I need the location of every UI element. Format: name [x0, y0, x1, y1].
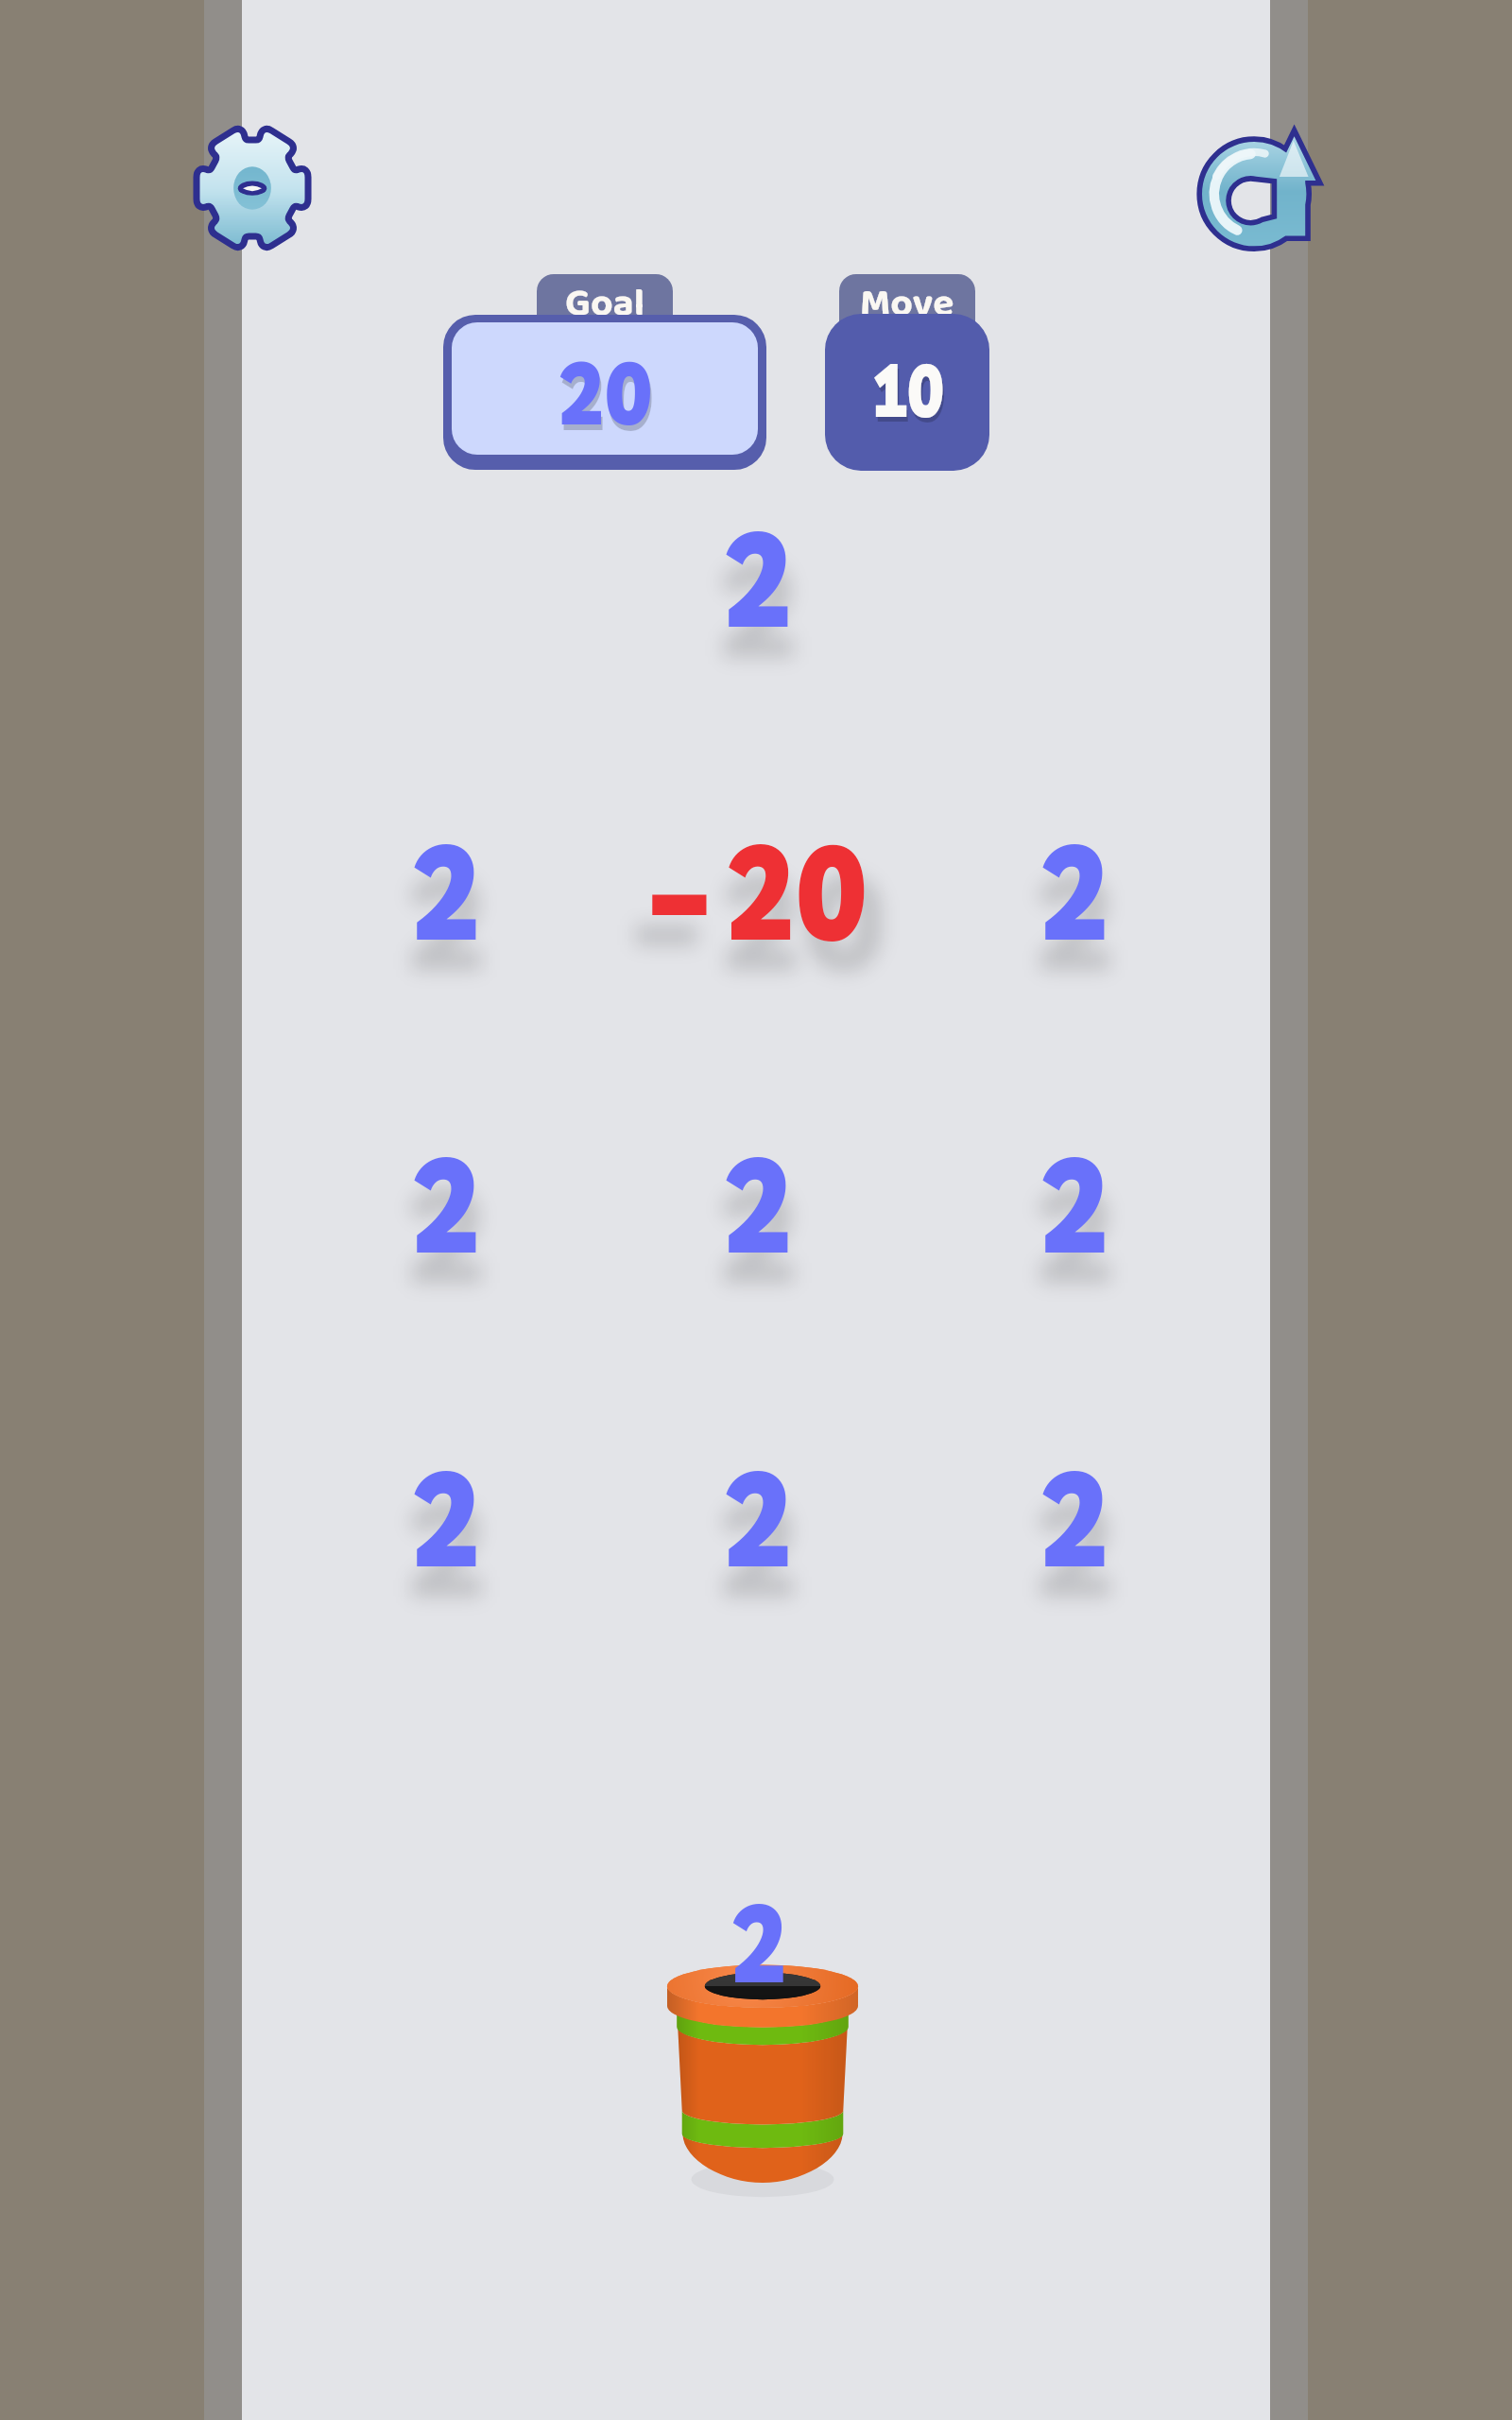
button[interactable]: Tile [626, 1374, 890, 1658]
staticText: 20 [560, 343, 654, 452]
button[interactable]: Tile [942, 1061, 1207, 1344]
staticText: – 20 [630, 837, 887, 1003]
staticText: 2 [404, 837, 489, 1003]
staticText: 2 [723, 1433, 794, 1599]
staticText: 2 [730, 1874, 788, 2009]
button[interactable]: Tile [942, 1374, 1207, 1658]
staticText: 2 [1033, 1463, 1117, 1630]
button[interactable]: Tile [314, 1061, 578, 1344]
staticText: 10 [873, 347, 946, 441]
staticText: 2 [723, 1119, 794, 1286]
button[interactable]: Restart [1202, 116, 1344, 266]
staticText: 2 [411, 1119, 482, 1286]
staticText: 2 [411, 806, 482, 973]
button[interactable]: Tile [942, 748, 1207, 1031]
staticText: Move [860, 274, 954, 328]
button[interactable]: Tile [626, 748, 890, 1031]
staticText: 2 [716, 1149, 801, 1316]
staticText: 2 [411, 1433, 482, 1599]
button[interactable]: Tile [314, 748, 578, 1031]
button[interactable]: Tile [314, 1374, 578, 1658]
staticText: 20 [558, 337, 652, 446]
staticText: 2 [1039, 1119, 1111, 1286]
staticText: 10 [871, 342, 944, 436]
staticText: 2 [1033, 1149, 1117, 1316]
staticText: 2 [716, 524, 801, 690]
staticText: 2 [1039, 806, 1111, 973]
button[interactable]: 10 [825, 314, 989, 471]
staticText: 2 [723, 493, 794, 660]
button[interactable]: Tile [626, 435, 890, 718]
staticText: 2 [716, 1463, 801, 1630]
button[interactable]: Tile [626, 1061, 890, 1344]
staticText: 2 [1039, 1433, 1111, 1599]
staticText: Goal [565, 274, 644, 328]
button[interactable]: 20 [443, 315, 766, 470]
button[interactable]: Pot [666, 1962, 859, 2183]
staticText: 2 [1033, 837, 1117, 1003]
button[interactable]: Settings [195, 124, 310, 252]
staticText: 2 [404, 1149, 489, 1316]
staticText: 2 [404, 1463, 489, 1630]
staticText: – 20 [649, 806, 867, 973]
